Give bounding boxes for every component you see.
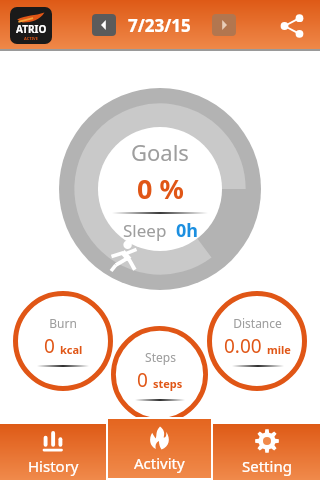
button[interactable]: Activity xyxy=(108,419,211,478)
staticText: mile xyxy=(267,342,291,357)
staticText: History xyxy=(28,456,79,476)
staticText: Activity xyxy=(134,453,185,473)
staticText: 7/23/15 xyxy=(128,14,191,37)
staticText: 0.00 xyxy=(224,333,262,359)
staticText: Distance xyxy=(233,315,282,331)
button[interactable]: Goals progress xyxy=(59,88,261,290)
button[interactable]: Steps xyxy=(111,326,208,423)
staticText: ACTIVE xyxy=(24,36,38,41)
staticText: 0 xyxy=(137,367,148,393)
button[interactable]: Share xyxy=(275,11,309,41)
staticText: 0 % xyxy=(137,170,184,207)
staticText: ATRIO xyxy=(16,22,47,36)
button[interactable]: History xyxy=(0,424,106,480)
button[interactable]: Distance xyxy=(207,291,307,391)
staticText: Sleep xyxy=(123,219,167,242)
staticText: kcal xyxy=(60,342,83,357)
staticText: Setting xyxy=(242,456,292,476)
button[interactable]: Next day xyxy=(212,14,236,36)
staticText: Burn xyxy=(49,315,77,331)
button[interactable]: Setting xyxy=(213,424,320,480)
button[interactable]: Atrio Active xyxy=(10,7,52,44)
staticText: Goals xyxy=(131,137,189,167)
staticText: Steps xyxy=(145,349,176,365)
button[interactable]: Previous day xyxy=(92,14,116,36)
button[interactable]: Burn xyxy=(13,291,113,391)
staticText: steps xyxy=(153,376,183,391)
staticText: 0 xyxy=(44,333,55,359)
staticText: 0h xyxy=(176,218,198,243)
